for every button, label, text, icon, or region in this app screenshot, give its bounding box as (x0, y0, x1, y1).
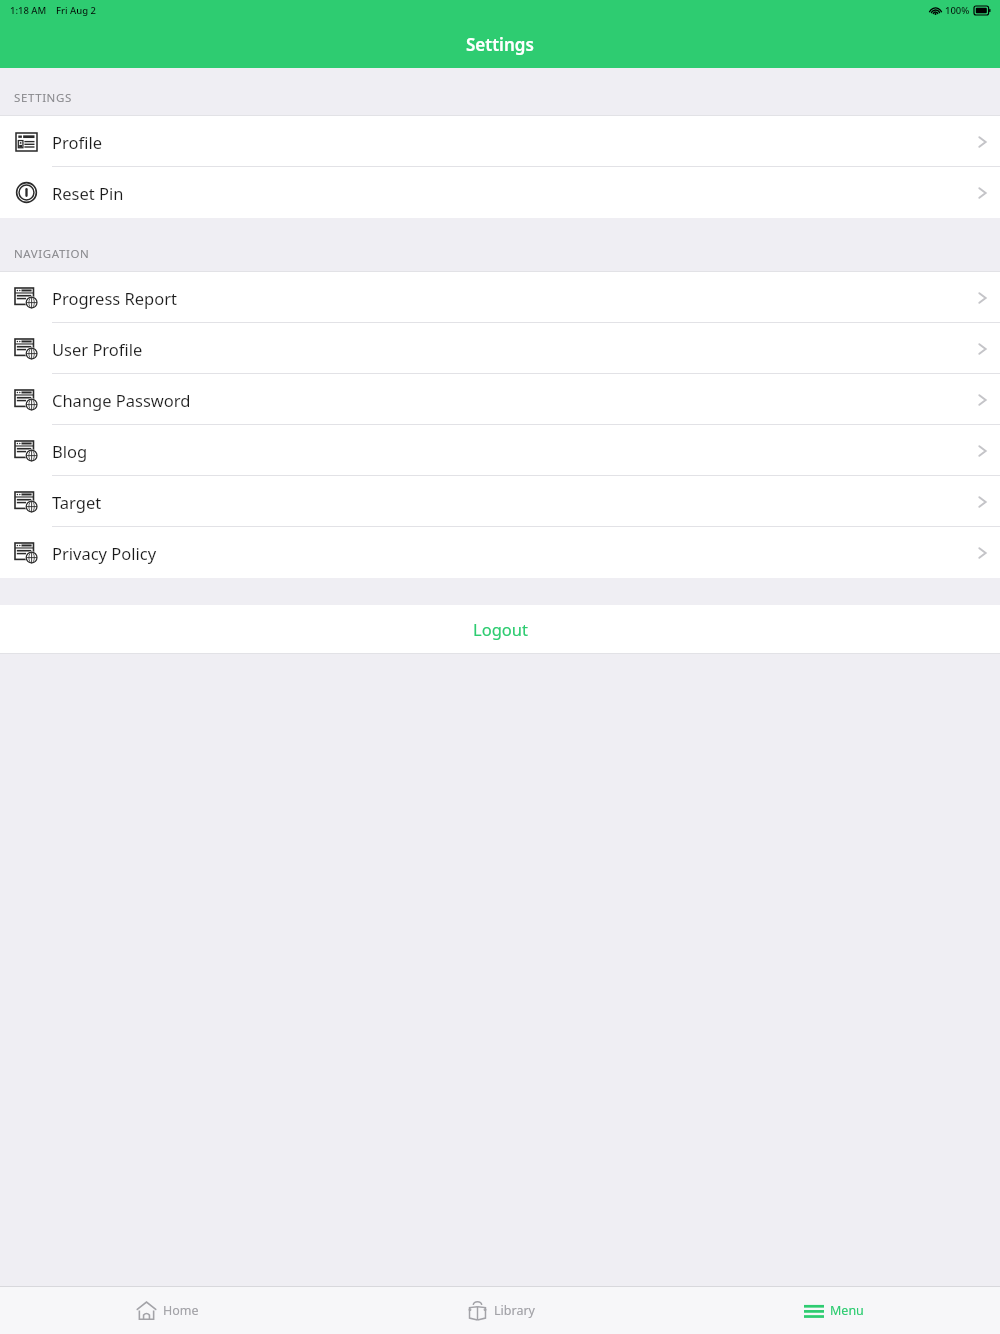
other: Menu (804, 1303, 824, 1319)
staticText: Change Password (52, 389, 191, 411)
staticText: Blog (52, 440, 88, 462)
staticText: Settings (466, 33, 534, 56)
button[interactable]: Home (0, 1287, 334, 1334)
staticText: 1:18 AM (10, 4, 47, 17)
staticText: Privacy Policy (52, 542, 157, 564)
other: Home (136, 1300, 157, 1321)
button[interactable]: Target (0, 476, 1000, 527)
staticText: NAVIGATION (14, 246, 90, 262)
button[interactable]: Logout (0, 605, 1000, 653)
staticText: Fri Aug 2 (56, 4, 97, 17)
staticText: SETTINGS (14, 90, 72, 106)
button[interactable]: Profile (0, 116, 1000, 167)
button[interactable]: Change Password (0, 374, 1000, 425)
staticText: Home (163, 1302, 199, 1319)
other: Library (467, 1300, 488, 1321)
staticText: Profile (52, 131, 102, 153)
button[interactable]: Menu (667, 1287, 1000, 1334)
button[interactable]: Blog (0, 425, 1000, 476)
button[interactable]: Reset Pin (0, 167, 1000, 218)
button[interactable]: User Profile (0, 323, 1000, 374)
button[interactable]: Privacy Policy (0, 527, 1000, 578)
button[interactable]: Progress Report (0, 272, 1000, 323)
staticText: Progress Report (52, 287, 177, 309)
staticText: User Profile (52, 338, 143, 360)
staticText: Logout (473, 618, 528, 640)
staticText: 100% (945, 4, 970, 17)
button[interactable]: Library (334, 1287, 667, 1334)
staticText: Library (494, 1302, 535, 1319)
staticText: Menu (830, 1302, 864, 1319)
staticText: Reset Pin (52, 182, 124, 204)
staticText: Target (52, 491, 102, 513)
